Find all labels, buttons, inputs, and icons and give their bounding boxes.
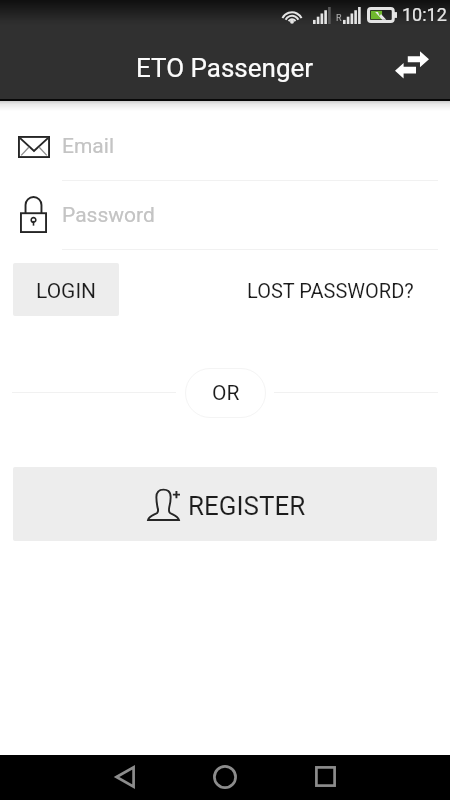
button[interactable]: OR bbox=[185, 368, 266, 418]
staticText: R bbox=[336, 13, 342, 24]
staticText: OR bbox=[212, 381, 240, 406]
button[interactable]: Recent apps bbox=[301, 754, 349, 799]
staticText: Password bbox=[62, 203, 155, 228]
button[interactable]: LOST PASSWORD? bbox=[235, 268, 425, 312]
button[interactable]: REGISTER bbox=[13, 467, 437, 541]
button[interactable]: Back bbox=[100, 754, 149, 799]
staticText: LOST PASSWORD? bbox=[247, 279, 414, 302]
staticText: LOGIN bbox=[36, 279, 97, 304]
staticText: ETO Passenger bbox=[136, 53, 314, 83]
button[interactable]: Switch user bbox=[388, 41, 436, 89]
staticText: 10:12 bbox=[402, 4, 447, 25]
staticText: REGISTER bbox=[188, 491, 306, 521]
button[interactable]: LOGIN bbox=[13, 263, 119, 316]
staticText: Email bbox=[62, 134, 114, 159]
button[interactable]: Home bbox=[201, 754, 249, 799]
